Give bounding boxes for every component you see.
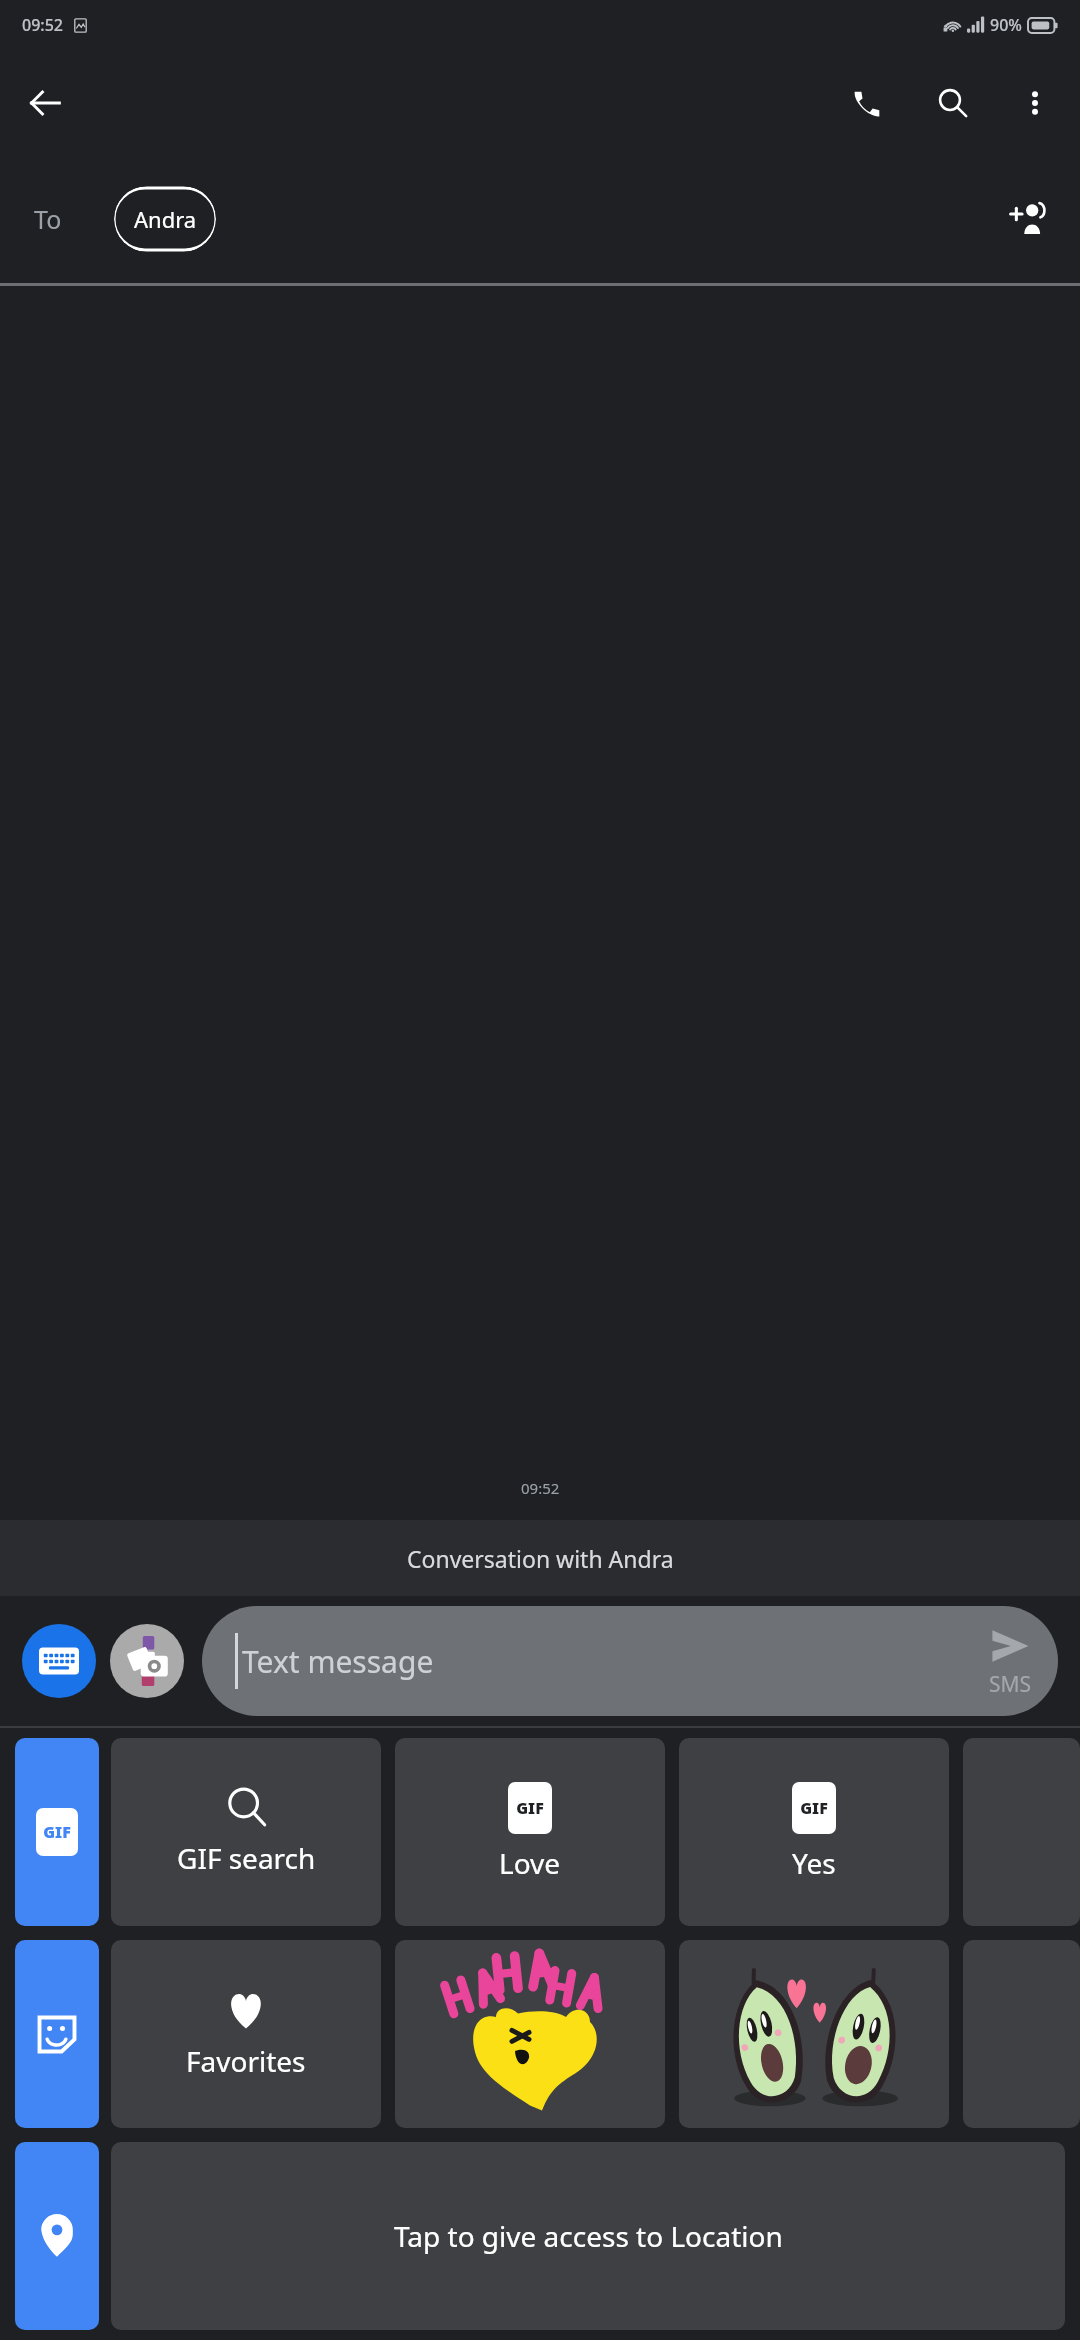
staticText: 09:52 — [22, 14, 63, 36]
staticText: Text message — [242, 1641, 434, 1682]
staticText: 09:52 — [521, 1478, 560, 1498]
button[interactable]: Text message — [202, 1606, 1058, 1716]
button[interactable]: Favorites — [111, 1940, 381, 2128]
staticText: Love — [499, 1844, 561, 1882]
staticText: Yes — [792, 1844, 836, 1882]
staticText: GIF — [43, 1821, 71, 1843]
staticText: Conversation with Andra — [407, 1543, 674, 1574]
button[interactable]: GIF search — [111, 1738, 381, 1926]
button[interactable]: GIF — [679, 1738, 949, 1926]
staticText: GIF — [516, 1797, 544, 1819]
staticText: Andra — [134, 204, 197, 234]
staticText: Tap to give access to Location — [394, 2217, 783, 2255]
button[interactable]: Category — [15, 1738, 99, 1926]
staticText: GIF — [800, 1797, 828, 1819]
button[interactable]: More options — [1004, 72, 1066, 134]
button[interactable]: Avocados in love sticker — [679, 1940, 949, 2128]
staticText: SMS — [989, 1670, 1032, 1699]
staticText: GIF search — [177, 1839, 316, 1877]
button[interactable]: Andra — [114, 186, 216, 252]
button[interactable]: Add people — [994, 188, 1056, 250]
button[interactable]: Keyboard — [22, 1624, 96, 1698]
button[interactable]: Tap to give access to Location — [111, 2142, 1065, 2330]
staticText: Favorites — [186, 2042, 306, 2080]
button[interactable]: Call — [836, 72, 898, 134]
staticText: To — [34, 202, 62, 236]
button[interactable]: Category — [15, 1940, 99, 2128]
staticText: 90% — [990, 14, 1022, 36]
button[interactable]: Search — [922, 72, 984, 134]
button[interactable]: Back — [14, 72, 76, 134]
button[interactable]: Category — [15, 2142, 99, 2330]
button[interactable]: GIF — [395, 1738, 665, 1926]
button[interactable]: Camera and gallery — [110, 1624, 184, 1698]
button[interactable]: Ha ha ha sticker — [395, 1940, 665, 2128]
